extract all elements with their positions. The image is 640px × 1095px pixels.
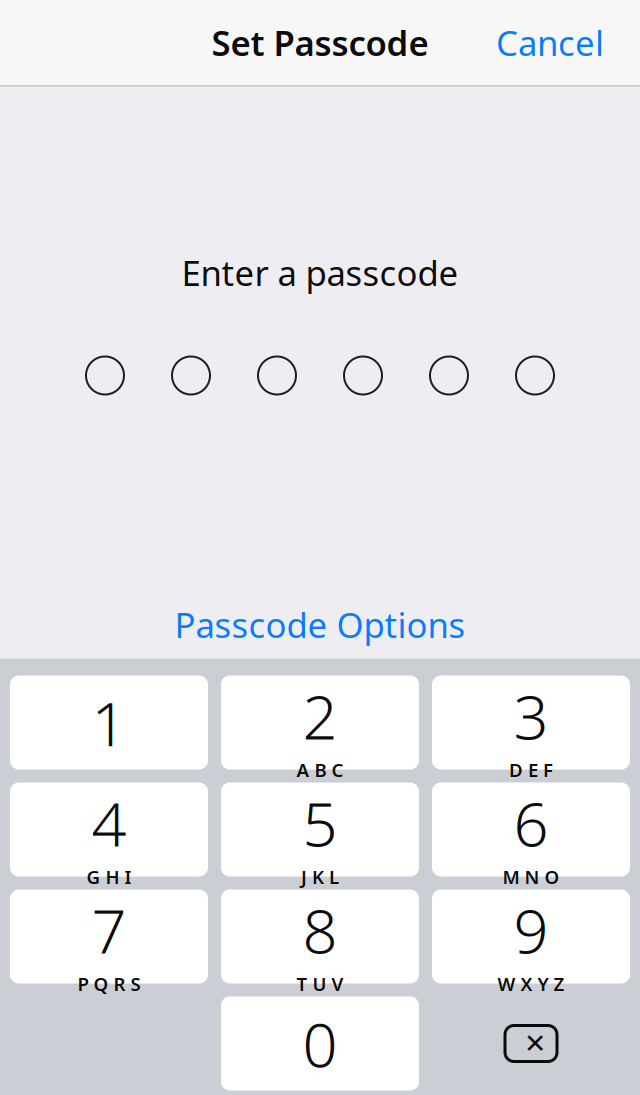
staticText: ✕ — [524, 1028, 546, 1059]
button[interactable]: 3 — [432, 675, 630, 769]
staticText: M N O — [502, 864, 559, 889]
staticText: 9 — [513, 889, 548, 970]
button[interactable]: 8 — [221, 889, 419, 983]
button[interactable]: Delete — [432, 996, 630, 1090]
staticText: G H I — [86, 864, 131, 889]
button[interactable]: 7 — [10, 889, 208, 983]
staticText: Passcode Options — [174, 601, 465, 647]
staticText: J K L — [301, 864, 339, 889]
button[interactable]: 4 — [10, 782, 208, 876]
staticText: 5 — [302, 782, 337, 863]
staticText: 7 — [91, 889, 126, 970]
staticText: Cancel — [496, 19, 604, 65]
staticText: 3 — [513, 675, 548, 756]
staticText: Enter a passcode — [181, 249, 458, 295]
button[interactable]: 1 — [10, 675, 208, 769]
staticText: 0 — [302, 1003, 337, 1084]
button[interactable]: Cancel — [480, 7, 620, 77]
staticText: W X Y Z — [497, 971, 564, 996]
staticText: 1 — [91, 682, 126, 763]
button[interactable]: 2 — [221, 675, 419, 769]
staticText: T U V — [296, 971, 343, 996]
staticText: 8 — [302, 889, 337, 970]
button[interactable]: 5 — [221, 782, 419, 876]
staticText: A B C — [296, 757, 343, 782]
staticText: P Q R S — [77, 971, 140, 996]
staticText: 4 — [91, 782, 126, 863]
button[interactable]: 0 — [221, 996, 419, 1090]
staticText: Set Passcode — [211, 19, 428, 65]
button[interactable]: 6 — [432, 782, 630, 876]
button[interactable]: 9 — [432, 889, 630, 983]
staticText: 2 — [302, 675, 337, 756]
staticText: 6 — [513, 782, 548, 863]
staticText: D E F — [509, 757, 553, 782]
button[interactable]: Passcode Options — [154, 593, 485, 655]
